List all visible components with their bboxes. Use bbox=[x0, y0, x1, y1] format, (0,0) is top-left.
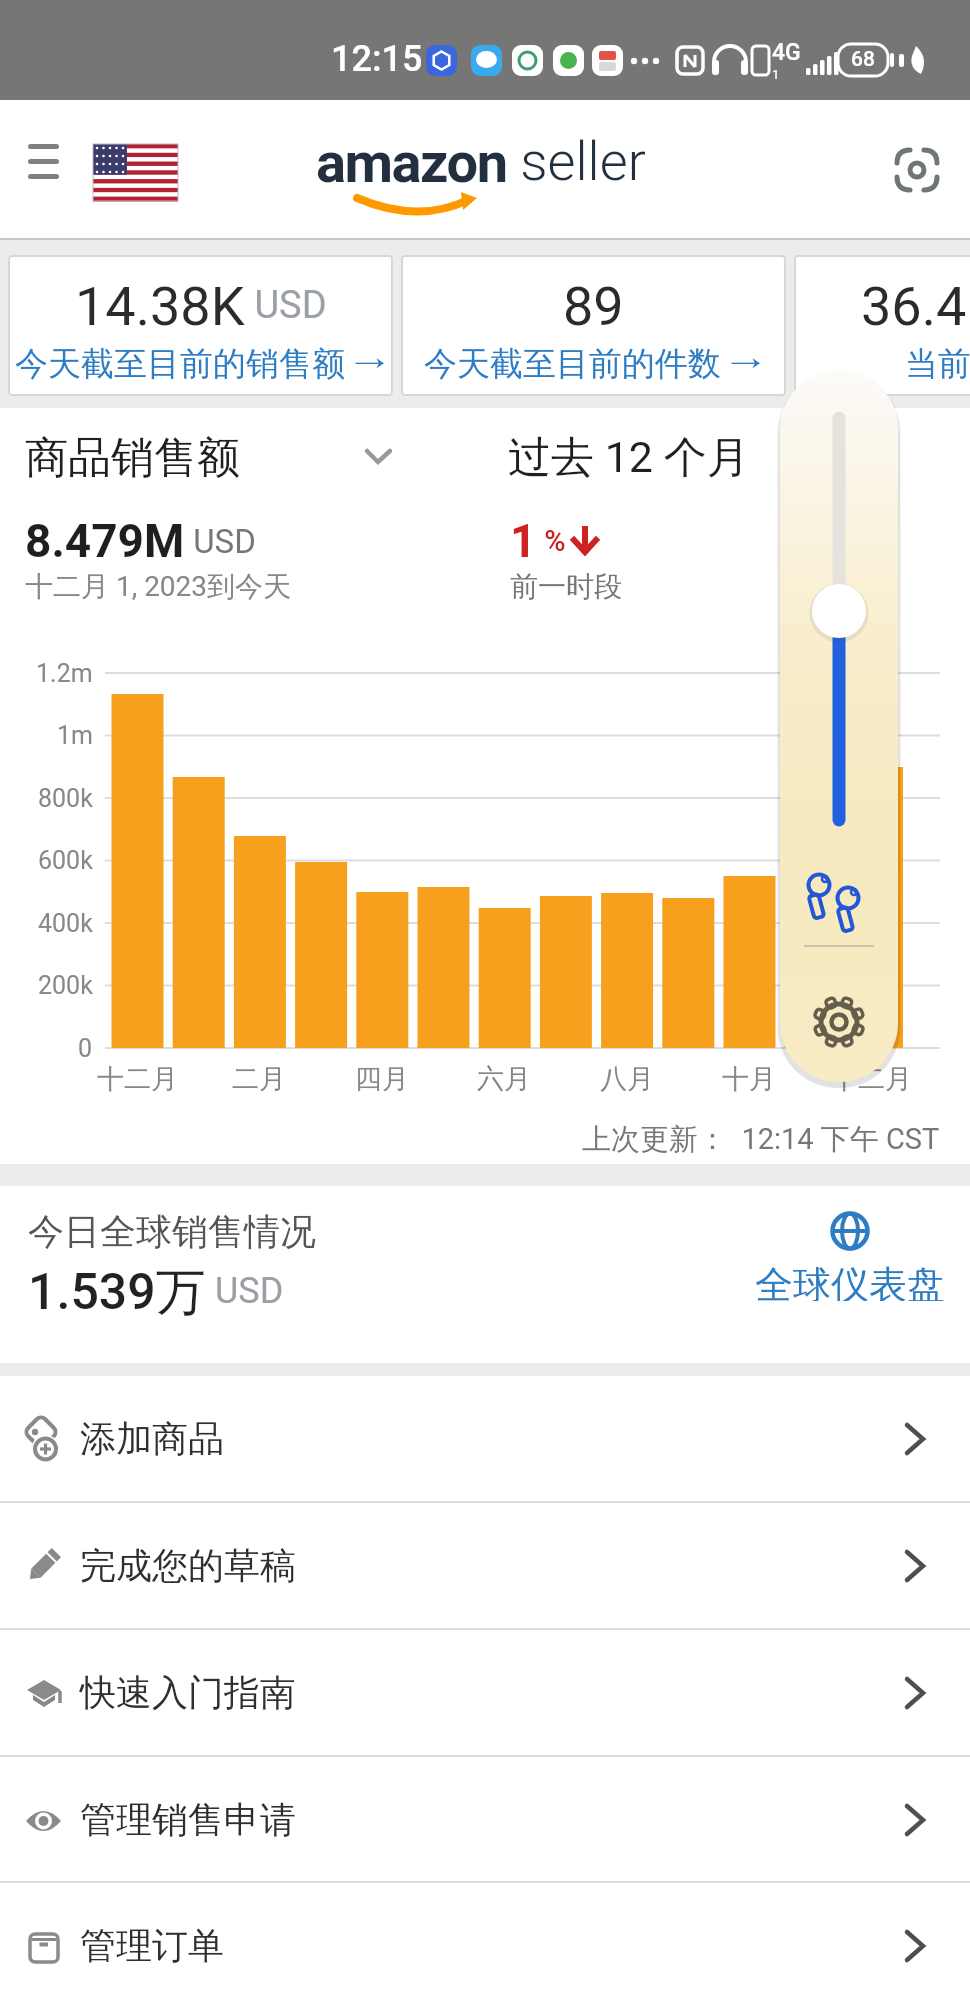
staticText: USD bbox=[185, 522, 256, 561]
staticText: 1.2m bbox=[36, 659, 93, 688]
staticText: 全球仪表盘 bbox=[755, 1261, 945, 1301]
button[interactable]: 管理订单 bbox=[0, 1883, 970, 2000]
staticText: 89 bbox=[563, 275, 624, 335]
staticText: 8.479M bbox=[25, 514, 185, 568]
staticText: 200k bbox=[38, 971, 93, 1000]
button[interactable]: 快速入门指南 bbox=[0, 1630, 970, 1755]
button[interactable]: 完成您的草稿 bbox=[0, 1503, 970, 1628]
staticText: 二月 bbox=[232, 1062, 286, 1096]
staticText: 当前销售速度 → bbox=[905, 343, 970, 383]
staticText: 1.539万 bbox=[28, 1261, 206, 1321]
button[interactable]: 管理销售申请 bbox=[0, 1757, 970, 1882]
button[interactable]: 36.41K bbox=[794, 255, 970, 396]
staticText: 1 bbox=[510, 514, 537, 568]
staticText: 800k bbox=[38, 784, 93, 813]
staticText: USD bbox=[206, 1270, 284, 1312]
staticText: 四月 bbox=[355, 1062, 409, 1096]
staticText: 68 bbox=[851, 47, 875, 72]
button[interactable]: 14.38K bbox=[8, 255, 393, 396]
staticText: 0 bbox=[78, 1034, 93, 1063]
staticText: 十二月 bbox=[97, 1062, 178, 1096]
button[interactable] bbox=[500, 430, 760, 486]
staticText: 十二月 bbox=[831, 1062, 912, 1096]
button[interactable]: 全球仪表盘 bbox=[745, 1261, 945, 1301]
staticText: 今天截至目前的件数 → bbox=[424, 343, 763, 383]
staticText: 添加商品 bbox=[80, 1416, 224, 1461]
staticText: 600k bbox=[38, 846, 93, 875]
staticText: 36.41K bbox=[861, 275, 970, 335]
button[interactable]: 添加商品 bbox=[0, 1376, 970, 1501]
staticText: 今天截至目前的销售额 → bbox=[15, 343, 387, 383]
staticText: 今日全球销售情况 bbox=[28, 1209, 316, 1254]
staticText: 前一时段 bbox=[510, 569, 622, 604]
button[interactable]: 89 bbox=[401, 255, 786, 396]
staticText: 快速入门指南 bbox=[80, 1670, 296, 1715]
staticText: 1 bbox=[772, 67, 780, 82]
staticText: 12:15 bbox=[331, 38, 423, 80]
staticText: 完成您的草稿 bbox=[80, 1543, 296, 1588]
staticText: 八月 bbox=[600, 1062, 654, 1096]
button[interactable]: amazon bbox=[0, 100, 970, 238]
staticText: 十二月 1, 2023到今天 bbox=[25, 569, 292, 604]
button[interactable] bbox=[755, 345, 970, 1115]
staticText: USD bbox=[245, 283, 327, 328]
staticText: 上次更新： 12:14 下午 CST bbox=[582, 1121, 940, 1158]
staticText: 过去 12 个月 bbox=[508, 431, 750, 485]
staticText: 六月 bbox=[477, 1062, 531, 1096]
staticText: 商品销售额 bbox=[25, 431, 240, 485]
staticText: 14.38K bbox=[75, 275, 245, 335]
staticText: 400k bbox=[38, 909, 93, 938]
staticText: 1m bbox=[57, 721, 93, 750]
staticText: amazon bbox=[316, 130, 507, 190]
staticText: 十月 bbox=[722, 1062, 776, 1096]
staticText: 管理订单 bbox=[80, 1923, 224, 1968]
staticText: % bbox=[537, 524, 566, 558]
button[interactable] bbox=[20, 430, 400, 486]
staticText: 4G bbox=[772, 39, 801, 66]
staticText: seller bbox=[507, 130, 646, 190]
staticText: 管理销售申请 bbox=[80, 1797, 296, 1842]
